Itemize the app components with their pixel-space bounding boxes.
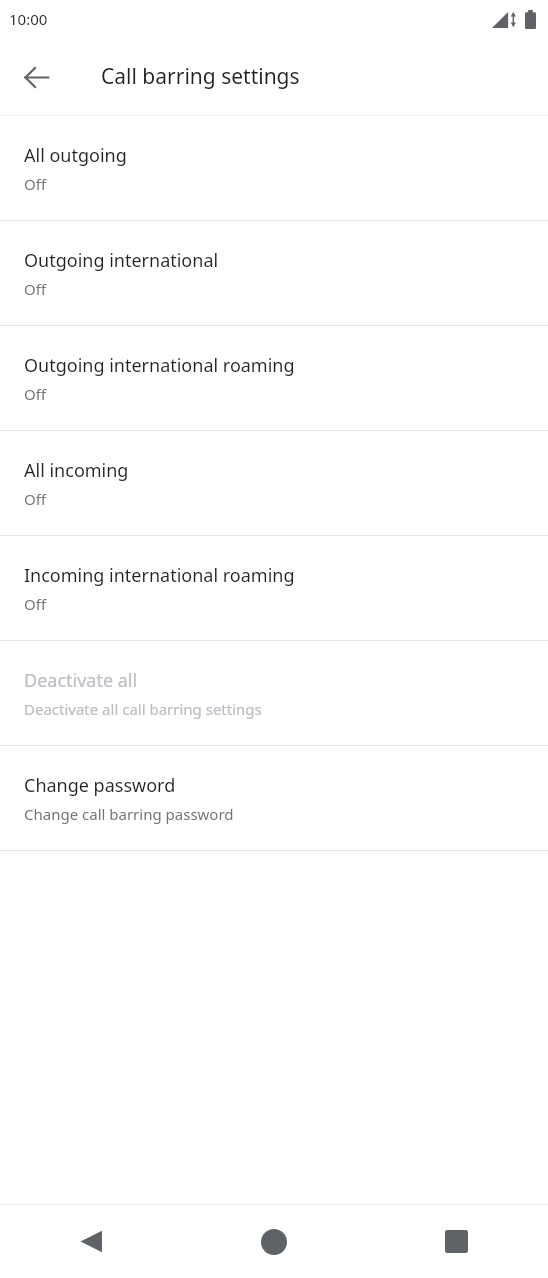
staticText: Deactivate all call barring settings [24, 699, 262, 719]
staticText: Deactivate all [24, 668, 138, 693]
button[interactable]: Home [182, 1205, 365, 1278]
button[interactable]: Incoming international roaming [0, 536, 548, 640]
button[interactable]: Outgoing international [0, 221, 548, 325]
button[interactable]: Outgoing international roaming [0, 326, 548, 430]
staticText: Outgoing international roaming [24, 353, 295, 378]
staticText: All outgoing [24, 143, 127, 168]
button[interactable]: All outgoing [0, 116, 548, 220]
staticText: Off [24, 174, 47, 194]
staticText: All incoming [24, 458, 129, 483]
staticText: Change password [24, 773, 176, 798]
staticText: Off [24, 384, 47, 404]
staticText: Off [24, 489, 47, 509]
button[interactable]: Back [0, 1205, 182, 1278]
button[interactable]: All incoming [0, 431, 548, 535]
staticText: Off [24, 594, 47, 614]
staticText: Outgoing international [24, 248, 219, 273]
staticText: Call barring settings [101, 62, 300, 91]
button[interactable]: Back [8, 49, 64, 105]
button[interactable]: Recent apps [365, 1205, 548, 1278]
staticText: Incoming international roaming [24, 563, 295, 588]
button[interactable]: Change password [0, 746, 548, 850]
staticText: 10:00 [9, 9, 48, 29]
button: Deactivate all [0, 641, 548, 745]
staticText: Change call barring password [24, 804, 234, 824]
staticText: Off [24, 279, 47, 299]
